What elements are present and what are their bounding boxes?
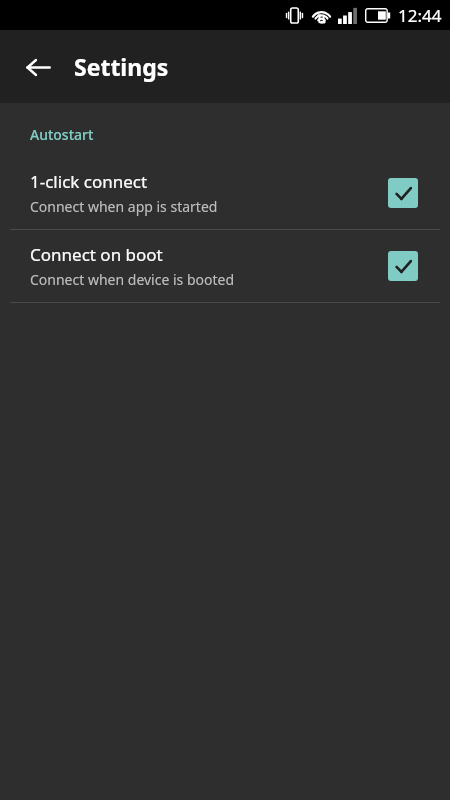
- staticText: Connect when device is booted: [30, 270, 235, 289]
- button[interactable]: 1-click connect: [0, 157, 450, 229]
- staticText: 12:44: [398, 4, 442, 27]
- button[interactable]: Enabled: [388, 251, 418, 281]
- staticText: Autostart: [30, 125, 94, 144]
- staticText: Connect on boot: [30, 243, 163, 266]
- button[interactable]: Enabled: [388, 178, 418, 208]
- staticText: 1-click connect: [30, 170, 148, 193]
- staticText: Connect when app is started: [30, 197, 218, 216]
- staticText: Settings: [74, 51, 169, 82]
- button[interactable]: Back: [14, 43, 62, 91]
- button[interactable]: Connect on boot: [0, 230, 450, 302]
